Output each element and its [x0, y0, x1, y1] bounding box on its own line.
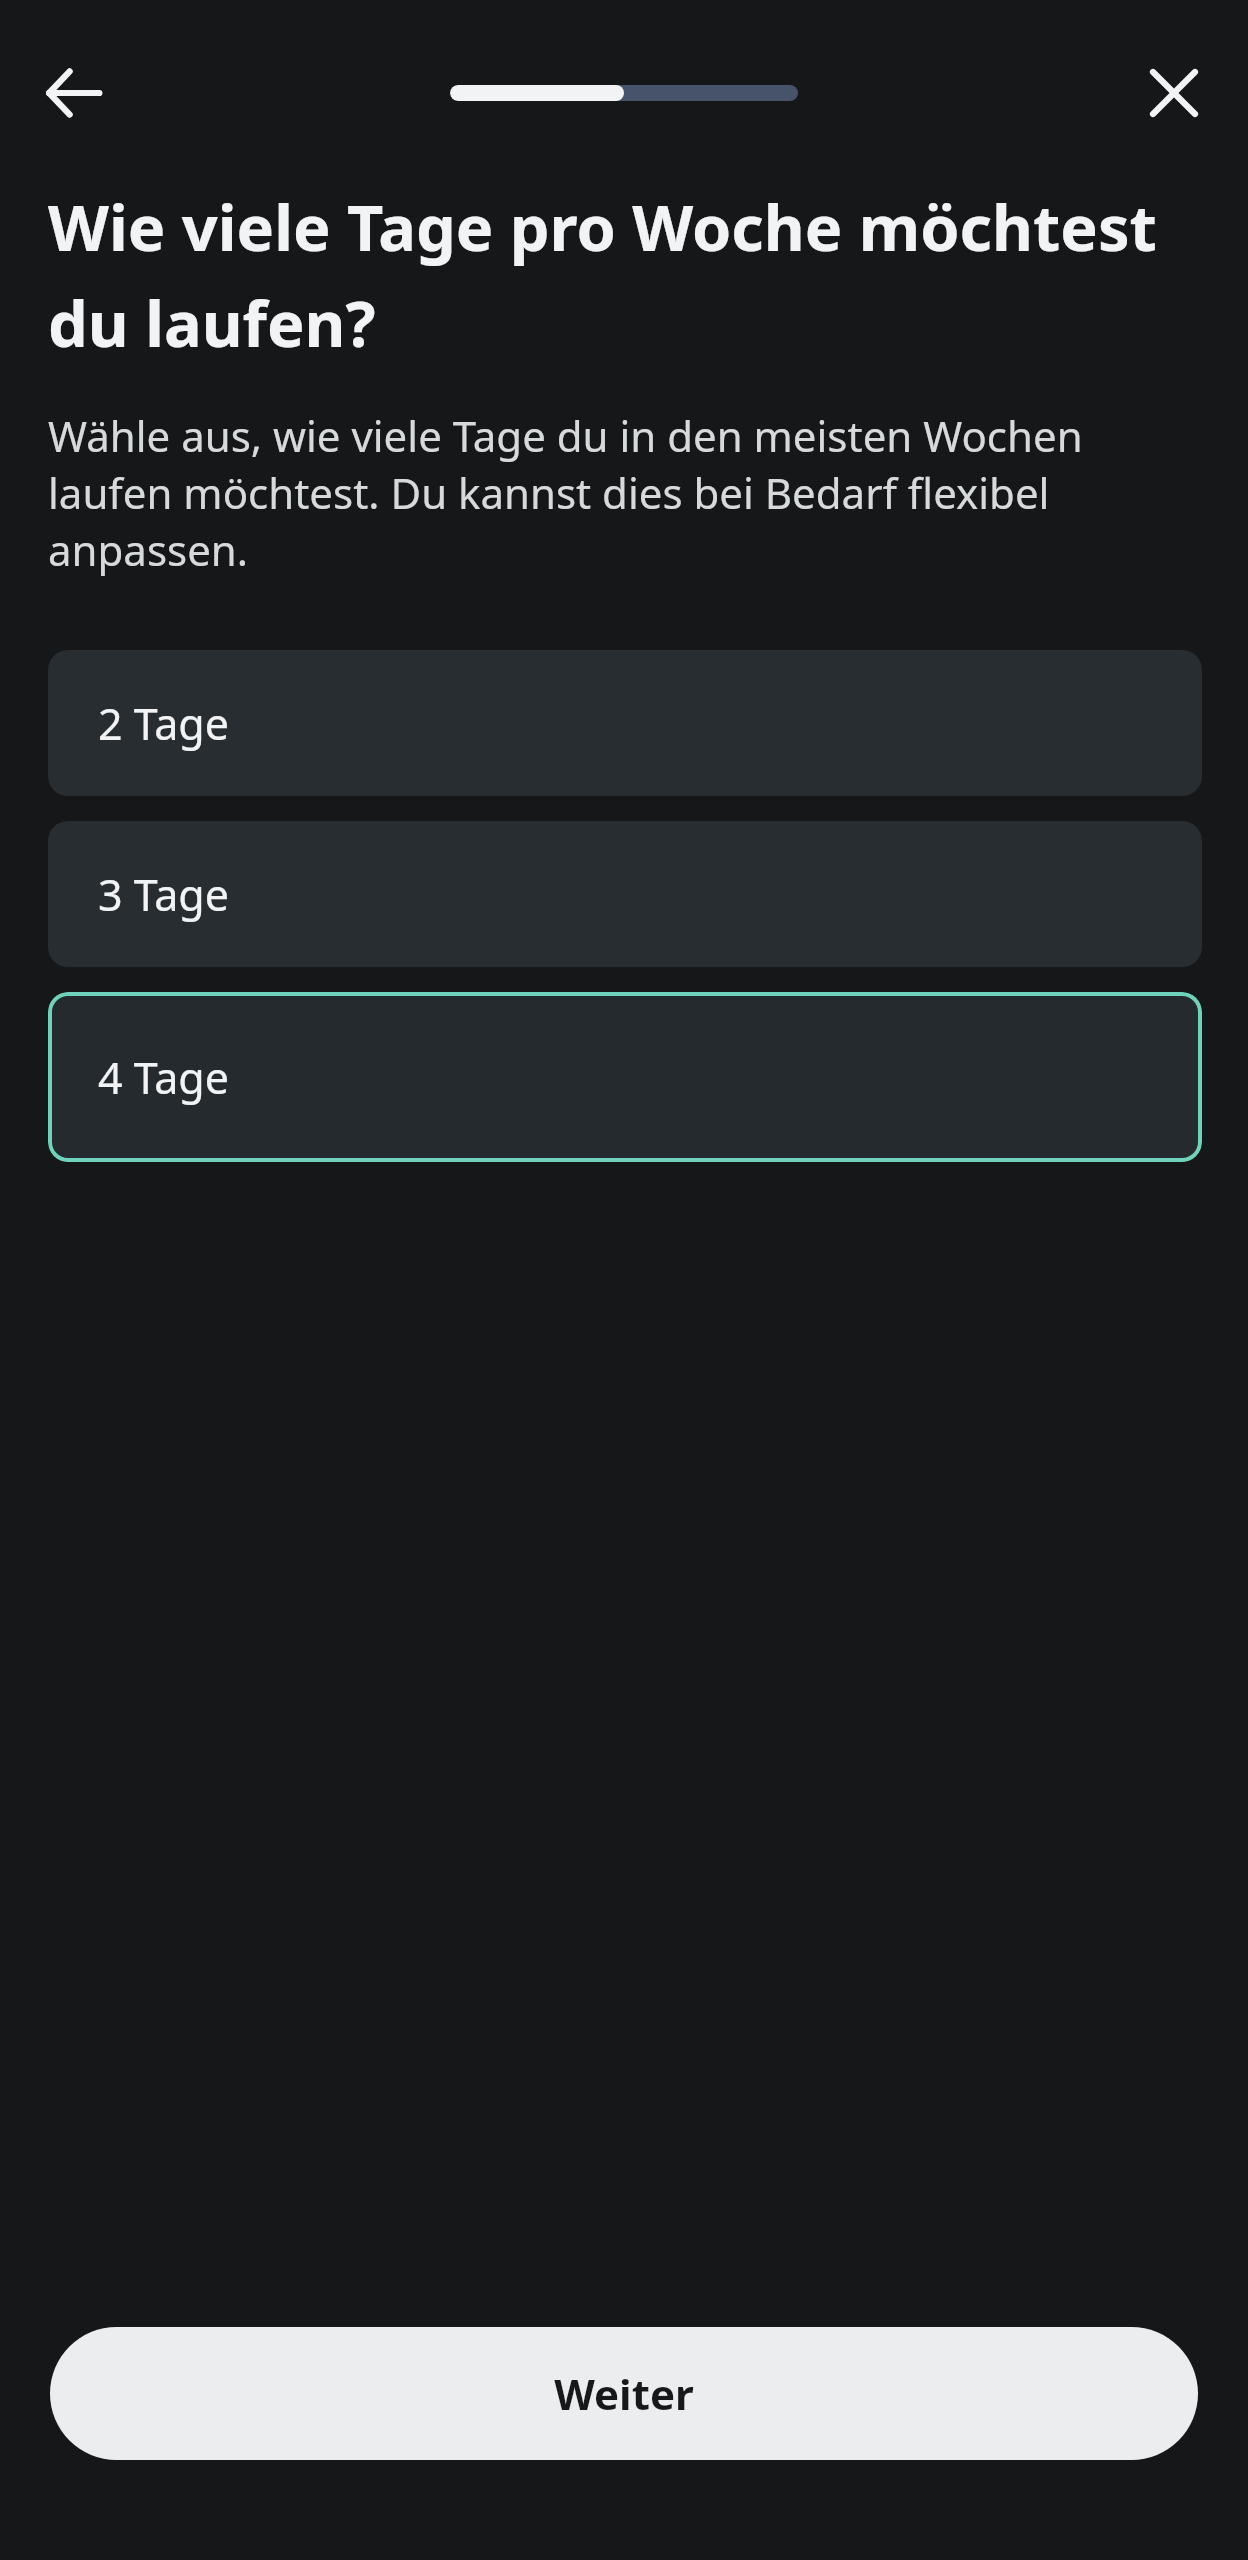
button[interactable]: Schließen [1122, 41, 1226, 145]
button[interactable]: Weiter [50, 2327, 1198, 2460]
staticText: 4 Tage [98, 1048, 230, 1107]
button[interactable]: 4 Tage [48, 992, 1202, 1162]
staticText: Weiter [554, 2365, 694, 2422]
staticText: Wähle aus, wie viele Tage du in den meis… [48, 407, 1176, 578]
button[interactable]: 3 Tage [48, 821, 1202, 967]
button[interactable]: 2 Tage [48, 650, 1202, 796]
staticText: Wie viele Tage pro Woche möchtest du lau… [48, 184, 1208, 365]
staticText: 2 Tage [98, 694, 230, 753]
staticText: 3 Tage [98, 865, 230, 924]
button[interactable]: Zurück [22, 41, 126, 145]
